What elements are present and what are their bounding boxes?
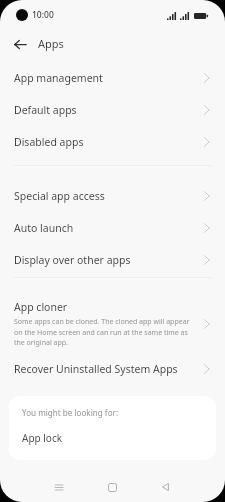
staticText: Apps (38, 36, 64, 51)
button[interactable]: App cloner (0, 297, 225, 350)
staticText: Auto launch (14, 221, 74, 235)
staticText: App lock (22, 431, 63, 445)
button[interactable]: Home (100, 475, 124, 499)
button[interactable]: App lock (9, 418, 216, 460)
staticText: Default apps (14, 103, 77, 117)
button[interactable]: Back (14, 33, 28, 55)
button[interactable]: Recover Uninstalled System Apps (0, 354, 225, 384)
staticText: Display over other apps (14, 253, 131, 267)
staticText: App cloner (14, 300, 68, 314)
button[interactable]: Disabled apps (0, 126, 225, 158)
button[interactable]: Display over other apps (0, 244, 225, 276)
button[interactable]: Recent apps (47, 475, 71, 499)
staticText: 10:00 (32, 9, 54, 21)
button[interactable]: Default apps (0, 94, 225, 126)
staticText: App management (14, 71, 103, 85)
staticText: Recover Uninstalled System Apps (14, 362, 178, 376)
button[interactable]: Back (153, 475, 177, 499)
button[interactable]: Auto launch (0, 212, 225, 244)
staticText: Some apps can be cloned. The cloned app … (14, 317, 197, 347)
staticText: You might be looking for: (22, 407, 119, 418)
staticText: Disabled apps (14, 135, 84, 149)
button[interactable]: Special app access (0, 180, 225, 212)
staticText: Special app access (14, 189, 105, 203)
button[interactable]: App management (0, 62, 225, 94)
